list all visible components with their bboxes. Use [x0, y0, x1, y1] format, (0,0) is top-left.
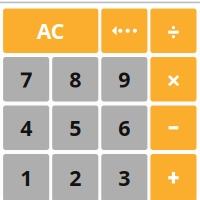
- button[interactable]: 5: [52, 105, 98, 150]
- button[interactable]: 1: [3, 154, 49, 200]
- button[interactable]: ×: [150, 57, 196, 101]
- button[interactable]: Minus: [150, 105, 196, 150]
- staticText: AC: [37, 17, 65, 45]
- staticText: 8: [69, 65, 81, 93]
- staticText: 3: [118, 163, 130, 192]
- button[interactable]: AC: [3, 8, 98, 53]
- staticText: ×: [166, 63, 180, 96]
- staticText: 7: [20, 65, 32, 93]
- button[interactable]: 3: [101, 154, 147, 200]
- button[interactable]: 2: [52, 154, 98, 200]
- button[interactable]: Plus: [150, 154, 196, 200]
- button[interactable]: 9: [101, 57, 147, 101]
- staticText: 1: [20, 163, 32, 192]
- staticText: 6: [118, 114, 130, 142]
- button[interactable]: Divide: [150, 8, 196, 53]
- button[interactable]: 6: [101, 105, 147, 150]
- button[interactable]: 4: [3, 105, 49, 150]
- button[interactable]: 8: [52, 57, 98, 101]
- button[interactable]: 7: [3, 57, 49, 101]
- button[interactable]: Delete: [101, 8, 147, 53]
- staticText: 2: [69, 163, 81, 192]
- staticText: 9: [118, 65, 130, 93]
- staticText: 5: [69, 114, 81, 142]
- staticText: 4: [20, 114, 32, 142]
